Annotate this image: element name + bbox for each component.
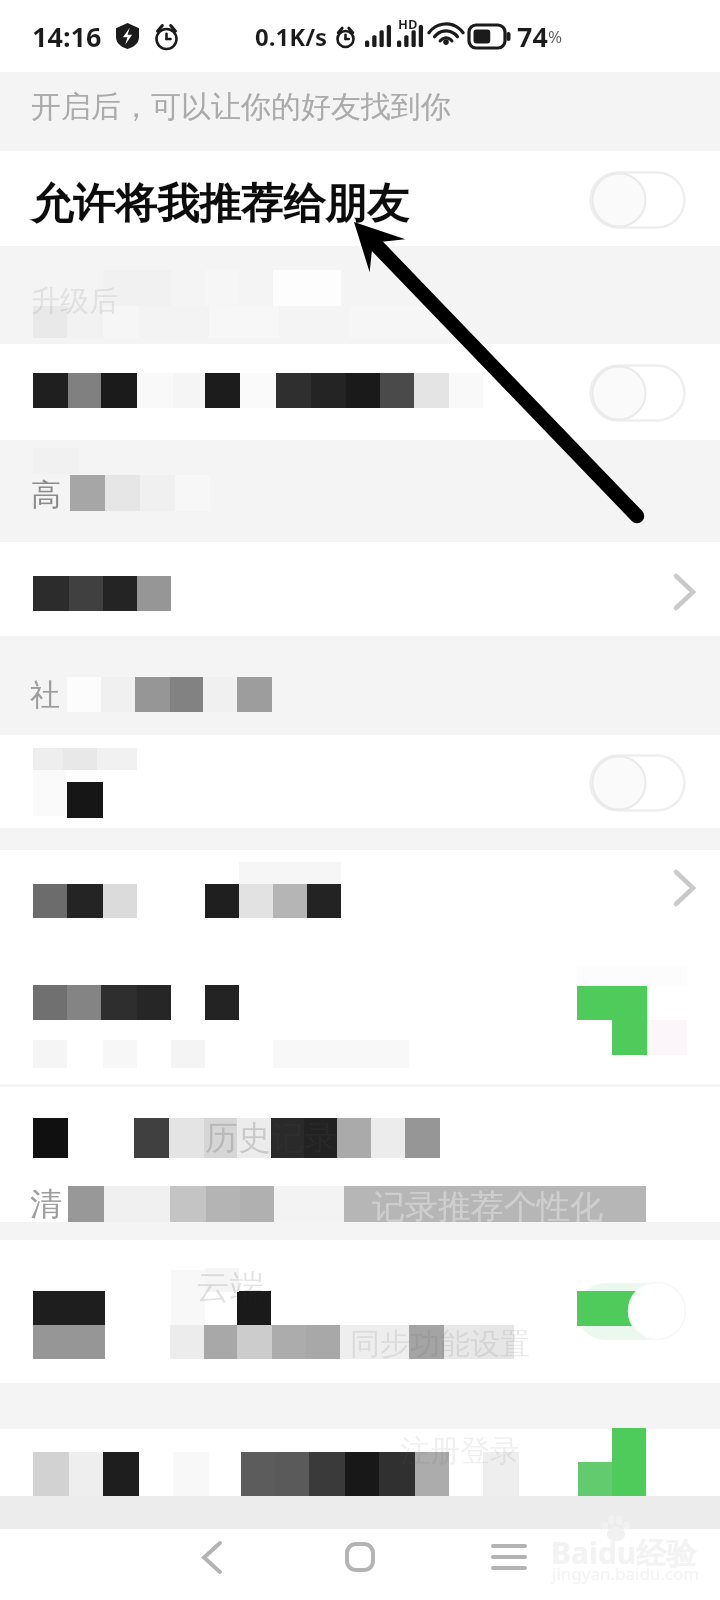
staticText: 同步功能设置 [350, 1325, 530, 1363]
staticText: 记录推荐个性化 [372, 1186, 603, 1228]
staticText: 注册登录 [400, 1432, 520, 1470]
staticText: jingyan.baidu.com [552, 1562, 700, 1585]
staticText: 清 [30, 1184, 62, 1224]
staticText: % [548, 25, 563, 48]
button[interactable]: More [672, 868, 698, 908]
staticText: 云端 [196, 1266, 264, 1309]
staticText: 升级后 [31, 283, 118, 320]
other: Annotation arrow [0, 0, 720, 1600]
button[interactable]: Toggle [589, 754, 686, 812]
staticText: Baidu经验 [551, 1532, 697, 1573]
staticText: HD [398, 15, 418, 33]
staticText: 0.1K/s [255, 20, 328, 53]
button[interactable]: Home [314, 1513, 406, 1600]
staticText: 14:16 [32, 18, 102, 55]
button[interactable]: Recents [463, 1513, 555, 1600]
button[interactable]: Toggle [589, 171, 686, 229]
staticText: 开启后，可以让你的好友找到你 [31, 88, 451, 126]
staticText: 社 [30, 676, 60, 714]
button[interactable]: Toggle [589, 364, 686, 422]
staticText: 允许将我推荐给朋友 [31, 178, 409, 231]
button[interactable]: 允许将我推荐给朋友 [0, 0, 720, 246]
button[interactable]: More [672, 572, 698, 612]
staticText: 历史记录 [205, 1117, 337, 1159]
staticText: 74 [517, 18, 548, 55]
button[interactable]: Back [166, 1513, 258, 1600]
staticText: 高 [31, 476, 61, 514]
